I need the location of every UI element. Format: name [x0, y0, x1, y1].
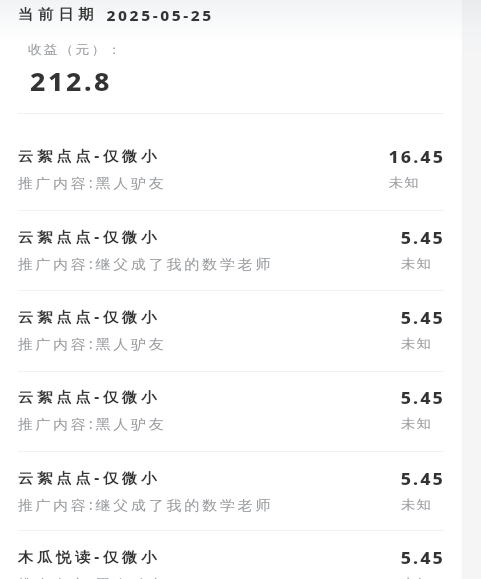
staticText: 推广内容:黑人驴友 [18, 174, 168, 192]
button[interactable]: 云絮点点-仅微小 [0, 195, 462, 276]
button[interactable]: 云絮点点-仅微小 [0, 355, 462, 436]
staticText: 未知 [388, 174, 421, 190]
staticText: 云絮点点-仅微小 [18, 227, 161, 246]
button[interactable]: 云絮点点-仅微小 [0, 436, 462, 517]
staticText: 未知 [401, 575, 433, 579]
staticText: 5.45 [401, 387, 445, 409]
staticText: 木瓜悦读-仅微小 [18, 547, 161, 566]
staticText: 未知 [401, 496, 433, 512]
staticText: 5.45 [401, 307, 445, 329]
staticText: 未知 [401, 415, 433, 431]
button[interactable]: 木瓜悦读-仅微小 [0, 515, 462, 579]
staticText: 云絮点点-仅微小 [18, 468, 161, 487]
staticText: 推广内容:黑人驴友 [18, 575, 168, 579]
staticText: 5.45 [401, 227, 445, 249]
staticText: 当前日期 [18, 6, 99, 24]
staticText: 5.45 [401, 547, 445, 569]
staticText: 未知 [401, 335, 433, 351]
staticText: 212.8 [30, 65, 112, 98]
staticText: 推广内容:黑人驴友 [18, 335, 168, 353]
staticText: 云絮点点-仅微小 [18, 307, 161, 326]
button[interactable]: 云絮点点-仅微小 [0, 114, 462, 210]
staticText: 5.45 [401, 468, 445, 490]
staticText: 云絮点点-仅微小 [18, 387, 161, 406]
staticText: 未知 [401, 255, 433, 271]
staticText: 16.45 [388, 146, 445, 168]
staticText: 推广内容:继父成了我的数学老师 [18, 255, 273, 273]
staticText: 云絮点点-仅微小 [18, 146, 161, 165]
staticText: 收益（元）： [28, 42, 124, 58]
staticText: 2025-05-25 [107, 6, 214, 25]
button[interactable]: 云絮点点-仅微小 [0, 275, 462, 356]
staticText: 推广内容:黑人驴友 [18, 415, 168, 433]
staticText: 推广内容:继父成了我的数学老师 [18, 496, 273, 514]
